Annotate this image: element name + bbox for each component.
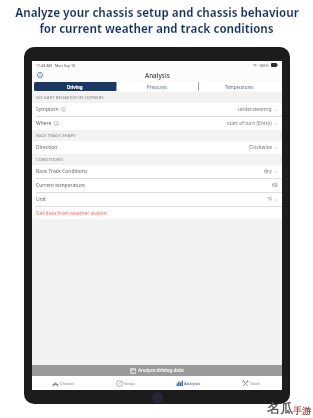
button[interactable]: Current temperature bbox=[32, 179, 282, 192]
button[interactable]: Direction bbox=[32, 141, 282, 154]
button[interactable]: Temperatures bbox=[199, 82, 280, 91]
staticText: understeering bbox=[238, 106, 272, 113]
staticText: Analyze driving data bbox=[138, 367, 184, 374]
button[interactable]: Tools bbox=[219, 376, 282, 390]
staticText: Where bbox=[36, 120, 52, 127]
staticText: Direction bbox=[36, 144, 58, 151]
button[interactable]: Chassis bbox=[32, 376, 94, 390]
staticText: Setup bbox=[124, 381, 135, 386]
staticText: Temperatures bbox=[225, 84, 254, 90]
button[interactable]: Setup bbox=[94, 376, 156, 390]
staticText: Analysis bbox=[145, 71, 170, 79]
button[interactable]: Analysis bbox=[156, 376, 219, 390]
staticText: 11:48 AM bbox=[36, 63, 52, 68]
staticText: Chassis bbox=[60, 381, 75, 386]
button[interactable]: Where bbox=[32, 117, 282, 130]
staticText: Current temperature bbox=[36, 182, 85, 189]
staticText: °F bbox=[267, 196, 272, 203]
staticText: 69 bbox=[272, 182, 278, 189]
staticText: 手游 bbox=[293, 405, 311, 416]
staticText: 名瓜 bbox=[267, 400, 293, 416]
button[interactable]: Pressures bbox=[117, 82, 198, 91]
button[interactable]: Get data from weather station bbox=[32, 207, 282, 219]
staticText: Symptom bbox=[36, 106, 59, 113]
staticText: Clockwise bbox=[249, 144, 272, 151]
staticText: Driving bbox=[67, 84, 83, 90]
button[interactable]: Analyze driving data bbox=[32, 365, 282, 376]
staticText: GO-KART BEHAVIOR IN CORNERS bbox=[36, 95, 104, 101]
staticText: Get data from weather station bbox=[36, 210, 107, 217]
staticText: Race Track Conditions bbox=[36, 168, 88, 175]
staticText: start of turn (Entry) bbox=[227, 120, 272, 127]
staticText: Analyze your chassis setup and chassis b… bbox=[15, 5, 299, 21]
staticText: Analysis bbox=[184, 381, 200, 386]
button[interactable]: Race Track Conditions bbox=[32, 165, 282, 178]
staticText: for current weather and track conditions bbox=[39, 21, 274, 37]
staticText: Pressures bbox=[147, 84, 168, 90]
button[interactable]: Info bbox=[35, 70, 45, 80]
button[interactable]: Symptom bbox=[32, 103, 282, 116]
staticText: Unit bbox=[36, 196, 46, 203]
staticText: CONDITIONS bbox=[36, 157, 63, 163]
button[interactable]: Driving bbox=[34, 82, 116, 91]
staticText: Mon Sep 18 bbox=[55, 63, 75, 68]
staticText: 100% bbox=[259, 63, 269, 68]
button[interactable]: Unit bbox=[32, 193, 282, 206]
staticText: RACE TRACK SHAPE bbox=[36, 133, 76, 139]
staticText: dry bbox=[264, 168, 272, 175]
staticText: Tools bbox=[250, 381, 260, 386]
